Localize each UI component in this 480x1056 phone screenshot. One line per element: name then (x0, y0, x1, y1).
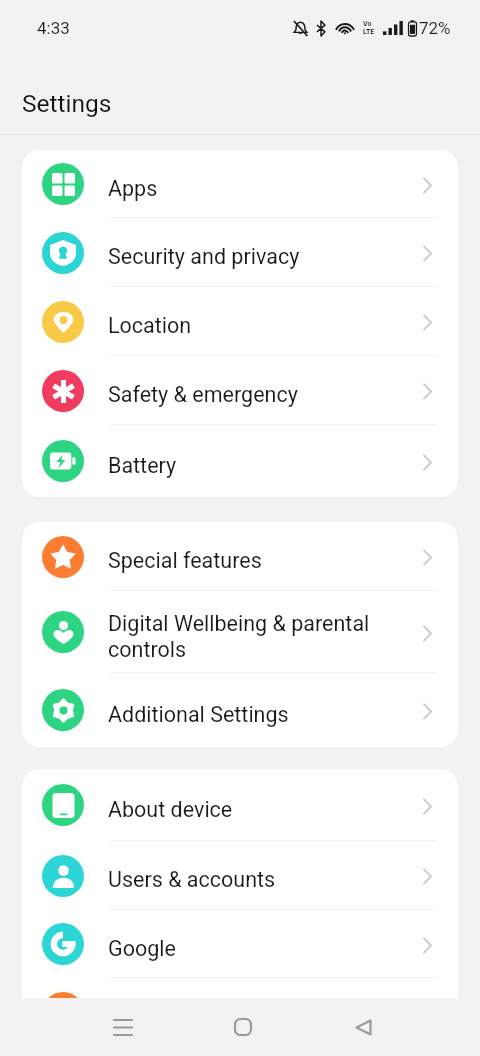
staticText: Battery (108, 453, 408, 478)
staticText: Additional Settings (108, 702, 408, 727)
button[interactable]: Home (183, 998, 303, 1056)
staticText: Users & accounts (108, 867, 408, 892)
button[interactable]: Location (22, 287, 458, 356)
button[interactable]: Users & accounts (22, 841, 458, 910)
button[interactable]: About device (22, 769, 458, 841)
button[interactable]: Tips & support (22, 978, 458, 1047)
staticText: Apps (108, 176, 408, 201)
button[interactable]: Safety & emergency (22, 356, 458, 425)
button[interactable]: Digital Wellbeing & parental controls (22, 591, 458, 673)
staticText: Digital Wellbeing & parental controls (108, 611, 408, 662)
button[interactable]: Google (22, 910, 458, 978)
button[interactable]: Security and privacy (22, 218, 458, 287)
staticText: 4:33 (37, 18, 70, 38)
button[interactable]: Special features (22, 522, 458, 591)
button[interactable]: Apps (22, 150, 458, 218)
staticText: Location (108, 313, 408, 338)
staticText: 72% (419, 18, 451, 38)
staticText: Security and privacy (108, 244, 408, 269)
staticText: About device (108, 797, 408, 822)
staticText: Special features (108, 548, 408, 573)
button[interactable]: Back (303, 998, 423, 1056)
button[interactable]: Recent apps (63, 998, 183, 1056)
staticText: Settings (22, 89, 112, 118)
button[interactable]: Additional Settings (22, 673, 458, 747)
staticText: Google (108, 936, 408, 961)
staticText: Tips & support (108, 1004, 408, 1029)
staticText: Safety & emergency (108, 382, 408, 407)
staticText: Vo LTE (363, 20, 375, 36)
button[interactable]: Battery (22, 425, 458, 497)
